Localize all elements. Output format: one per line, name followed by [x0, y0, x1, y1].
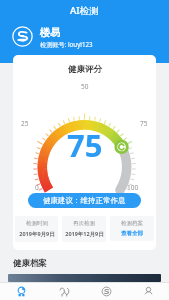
button[interactable]: 首页 [0, 283, 43, 300]
button[interactable]: 检测时间 [15, 216, 58, 242]
button[interactable]: 我的 [127, 283, 169, 300]
staticText: 2019年9月9日 [19, 230, 55, 238]
staticText: 25 [21, 119, 29, 128]
staticText: 75 [67, 124, 103, 166]
staticText: 检测时间 [26, 220, 48, 227]
button[interactable]: 健康调理 [85, 283, 127, 300]
staticText: AI检测 [70, 4, 99, 17]
other: 健康调理 [101, 286, 112, 297]
staticText: 检测档案 [121, 220, 143, 227]
other: AI检测 [59, 286, 70, 297]
staticText: 健康评分 [68, 64, 102, 75]
staticText: 健康建议：维持正常作息 [43, 196, 126, 205]
button[interactable]: AI检测 [43, 283, 85, 300]
staticText: 查看全部 [121, 230, 143, 237]
staticText: 75 [140, 119, 148, 128]
staticText: 楼易 [40, 26, 60, 39]
staticText: 100 [127, 183, 139, 192]
staticText: 健康档案 [13, 258, 47, 269]
button[interactable]: 健康建议：维持正常作息 [28, 193, 141, 208]
staticText: 检测账号: louyi123 [40, 40, 93, 48]
staticText: 50 [81, 82, 89, 91]
staticText: 0 [35, 183, 39, 192]
other: 我的 [143, 286, 154, 297]
button[interactable]: 检测档案 [110, 216, 154, 241]
other: 首页 [16, 286, 27, 297]
button[interactable]: 再次检测 [62, 216, 106, 242]
staticText: 首页 [17, 299, 27, 300]
staticText: 再次检测 [73, 220, 95, 227]
staticText: 2019年12月9日 [65, 230, 104, 238]
